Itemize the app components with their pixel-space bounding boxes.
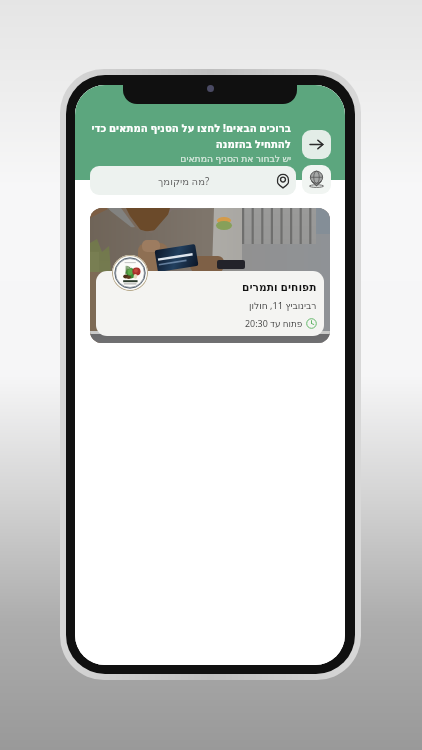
staticText: פתוח עד 20:30 (245, 317, 303, 329)
staticText: רבינוביץ 11, חולון (249, 299, 317, 312)
staticText: תפוחים ותמרים (242, 280, 317, 295)
staticText: ברוכים הבאים! לחצו על הסניף המתאים כדי ל… (85, 121, 291, 151)
button[interactable]: מיקום נוכחי (302, 165, 331, 194)
button[interactable]: מה מיקומך? (90, 166, 296, 195)
staticText: יש לבחור את הסניף המתאים (85, 152, 291, 165)
button[interactable]: תפוחים ותמרים (90, 208, 330, 343)
staticText: מה מיקומך? (158, 174, 210, 188)
button[interactable]: המשך (302, 130, 331, 159)
